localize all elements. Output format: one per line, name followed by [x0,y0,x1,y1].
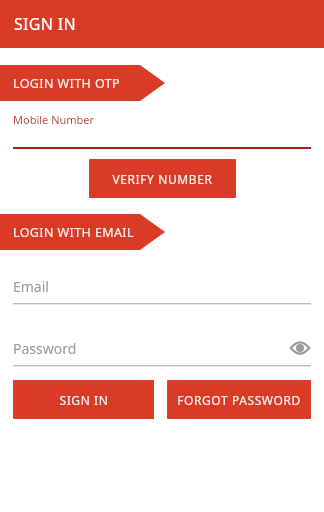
button[interactable]: SIGN IN [13,380,154,419]
staticText: SIGN IN [14,13,76,35]
staticText: LOGIN WITH EMAIL [13,224,134,241]
staticText: LOGIN WITH OTP [13,75,120,92]
button[interactable]: Show password [289,337,311,359]
staticText: Mobile Number [13,112,95,127]
button[interactable]: FORGOT PASSWORD [167,380,311,419]
button[interactable]: LOGIN WITH EMAIL [0,214,324,250]
staticText: Password [13,339,289,358]
button[interactable]: VERIFY NUMBER [89,159,236,198]
button[interactable]: LOGIN WITH OTP [0,65,324,101]
staticText: Email [13,277,311,296]
staticText: FORGOT PASSWORD [177,392,301,408]
staticText: VERIFY NUMBER [112,171,213,187]
staticText: SIGN IN [59,392,109,408]
